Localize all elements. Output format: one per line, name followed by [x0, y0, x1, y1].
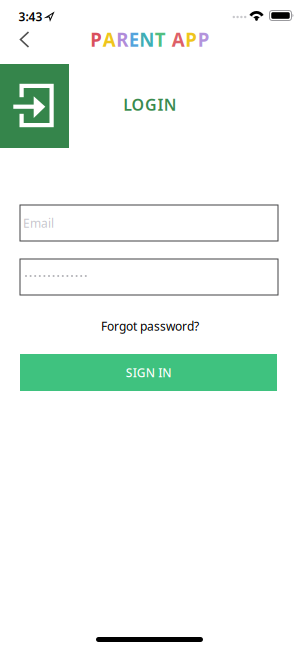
- staticText: R: [116, 27, 128, 52]
- staticText: IN: [158, 364, 171, 380]
- button[interactable]: Password: [20, 259, 278, 295]
- staticText: SIGN: [126, 364, 155, 380]
- staticText: N: [139, 27, 154, 52]
- staticText: Email: [23, 215, 54, 231]
- button[interactable]: Back: [12, 24, 36, 55]
- button[interactable]: SIGN: [20, 354, 277, 391]
- staticText: T: [155, 27, 166, 52]
- staticText: Forgot password?: [101, 318, 199, 334]
- button[interactable]: Email: [20, 205, 278, 241]
- staticText: E: [129, 27, 139, 52]
- staticText: P: [185, 27, 197, 52]
- button[interactable]: Forgot password?: [97, 314, 203, 338]
- staticText: LOGIN: [123, 94, 177, 115]
- staticText: P: [198, 27, 210, 52]
- staticText: 3:43: [18, 8, 42, 24]
- staticText: P: [90, 27, 102, 52]
- staticText: A: [172, 27, 185, 52]
- staticText: A: [103, 27, 116, 52]
